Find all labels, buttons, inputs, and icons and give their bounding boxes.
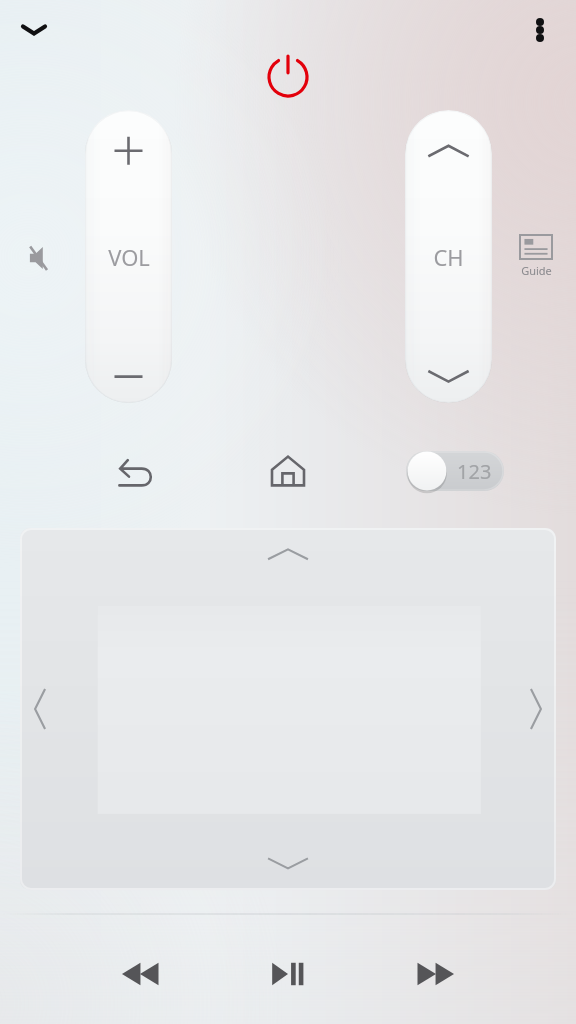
button[interactable]: Play or pause	[252, 938, 324, 1010]
button[interactable]: Power	[258, 46, 318, 106]
button[interactable]: Home	[259, 442, 317, 500]
button[interactable]: Rewind	[104, 938, 176, 1010]
button[interactable]: Collapse	[6, 2, 62, 58]
button[interactable]: Fast forward	[400, 938, 472, 1010]
button[interactable]: CH	[405, 110, 492, 403]
button[interactable]: Guide	[505, 225, 567, 287]
staticText: 123	[457, 458, 492, 485]
staticText: Guide	[521, 263, 552, 278]
button[interactable]: More options	[512, 2, 568, 58]
button[interactable]: Back	[108, 442, 166, 500]
button[interactable]: 123	[406, 451, 504, 491]
button[interactable]: VOL	[85, 110, 172, 403]
staticText: CH	[433, 242, 464, 272]
button[interactable]: Touchpad	[20, 528, 556, 890]
staticText: VOL	[108, 242, 150, 272]
button[interactable]: Mute	[12, 229, 70, 287]
